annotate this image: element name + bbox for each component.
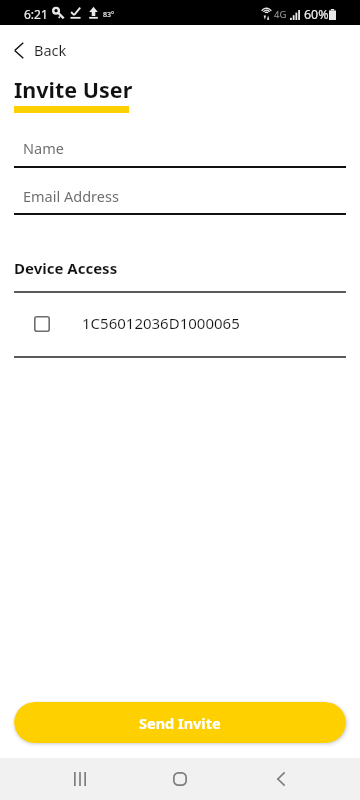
staticText: Name [23,138,64,158]
staticText: Device Access [14,258,118,278]
staticText: 6:21 [24,6,48,22]
button[interactable]: 1C56012036D1000065 [0,292,360,356]
staticText: Send Invite [139,713,221,733]
button[interactable]: Back [0,33,81,67]
button[interactable]: Name [0,134,360,164]
staticText: 83° [103,10,115,20]
staticText: Back [34,40,67,60]
button[interactable]: Back [251,758,311,800]
button[interactable]: Recent apps [50,758,110,800]
staticText: 4G [274,8,287,21]
staticText: Email Address [23,186,119,206]
staticText: 60% [304,6,329,23]
button[interactable]: Email Address [0,182,360,212]
button[interactable]: Home [150,758,210,800]
staticText: 1C56012036D1000065 [82,313,240,333]
staticText: Invite User [14,75,133,104]
button[interactable]: Send Invite [14,702,346,743]
